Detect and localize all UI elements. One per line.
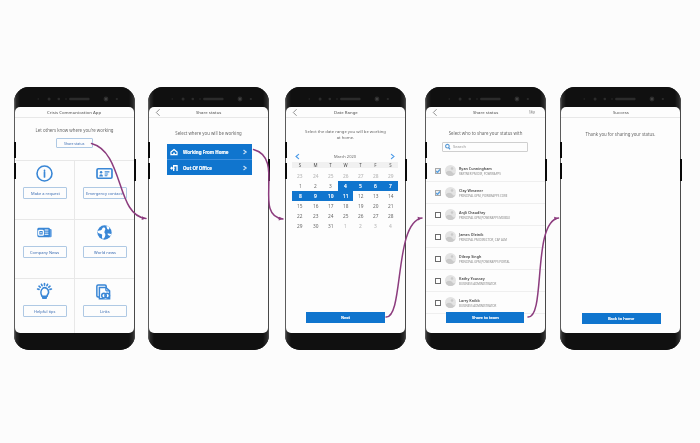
button[interactable]: Links: [83, 305, 127, 317]
staticText: 27: [373, 213, 379, 220]
button[interactable]: 29: [292, 221, 308, 231]
button[interactable]: World news: [83, 246, 127, 258]
button[interactable]: Kathy Youssey: [435, 270, 542, 291]
staticText: Crisis Communication App: [47, 109, 102, 115]
staticText: 2: [359, 223, 362, 230]
button[interactable]: 3: [368, 221, 383, 231]
staticText: 7: [389, 183, 392, 190]
button[interactable]: Next month: [388, 152, 397, 161]
button[interactable]: 28: [383, 211, 398, 221]
button[interactable]: Company News: [23, 246, 67, 258]
staticText: BUSINESS ADMINISTRATOR: [459, 304, 497, 308]
button[interactable]: 2: [308, 181, 323, 191]
staticText: 10: [328, 193, 334, 200]
button[interactable]: Skip: [529, 110, 536, 114]
button[interactable]: 28: [368, 171, 383, 181]
button[interactable]: 20: [368, 201, 383, 211]
button[interactable]: Company News: [15, 220, 74, 278]
button[interactable]: 6: [368, 181, 383, 191]
button[interactable]: Share to team: [446, 312, 524, 323]
button[interactable]: 12: [353, 191, 368, 201]
button[interactable]: Make a request: [23, 187, 67, 199]
button[interactable]: Back: [426, 107, 437, 117]
button[interactable]: 27: [368, 211, 383, 221]
staticText: Share status: [473, 109, 499, 115]
staticText: Helpful tips: [34, 309, 56, 314]
button[interactable]: 17: [323, 201, 338, 211]
button[interactable]: 5: [353, 181, 368, 191]
button[interactable]: Out Of Office: [167, 160, 252, 175]
staticText: Select the date range you will be workin…: [286, 129, 405, 141]
button[interactable]: Ryan Cunningham: [435, 160, 542, 181]
button[interactable]: 21: [383, 201, 398, 211]
staticText: 23: [313, 213, 319, 220]
staticText: Working From Home: [183, 149, 241, 155]
button[interactable]: Anjli Chaudhry: [435, 204, 542, 225]
staticText: Date Range: [334, 109, 358, 115]
button[interactable]: 4: [383, 221, 398, 231]
button[interactable]: 9: [308, 191, 323, 201]
button[interactable]: Search: [442, 142, 528, 152]
staticText: 2: [314, 183, 317, 190]
button[interactable]: 31: [323, 221, 338, 231]
button[interactable]: 14: [383, 191, 398, 201]
button[interactable]: Back: [286, 107, 297, 117]
staticText: Share status: [196, 109, 222, 115]
button[interactable]: Back to home: [582, 313, 661, 324]
button[interactable]: 25: [323, 171, 338, 181]
button[interactable]: 25: [338, 211, 353, 221]
button[interactable]: 22: [292, 211, 308, 221]
button[interactable]: 15: [292, 201, 308, 211]
button[interactable]: 29: [383, 171, 398, 181]
button[interactable]: World news: [75, 220, 134, 278]
button[interactable]: 1: [292, 181, 308, 191]
staticText: James Oleinik: [459, 232, 484, 237]
button[interactable]: 24: [323, 211, 338, 221]
button[interactable]: James Oleinik: [435, 226, 542, 247]
staticText: 9: [314, 193, 317, 200]
button[interactable]: 23: [308, 211, 323, 221]
staticText: 20: [373, 203, 379, 210]
button[interactable]: Dileep Singh: [435, 248, 542, 269]
button[interactable]: 26: [353, 211, 368, 221]
button[interactable]: 1: [338, 221, 353, 231]
button[interactable]: 26: [338, 171, 353, 181]
button[interactable]: Next: [306, 312, 385, 323]
staticText: 11: [343, 193, 349, 200]
button[interactable]: Helpful tips: [15, 279, 74, 333]
button[interactable]: 18: [338, 201, 353, 211]
button[interactable]: Make a request: [15, 161, 74, 219]
staticText: 1: [344, 223, 347, 230]
staticText: Success: [613, 109, 629, 115]
button[interactable]: Working From Home: [167, 144, 252, 159]
staticText: 4: [389, 223, 392, 230]
button[interactable]: 19: [353, 201, 368, 211]
button[interactable]: Links: [75, 279, 134, 333]
button[interactable]: Helpful tips: [23, 305, 67, 317]
button[interactable]: 10: [323, 191, 338, 201]
staticText: 28: [373, 173, 379, 180]
button[interactable]: 30: [308, 221, 323, 231]
button[interactable]: 13: [368, 191, 383, 201]
button[interactable]: 4: [338, 181, 353, 191]
button[interactable]: 11: [338, 191, 353, 201]
button[interactable]: Previous month: [293, 152, 302, 161]
button[interactable]: 27: [353, 171, 368, 181]
button[interactable]: Share status: [56, 138, 93, 148]
button[interactable]: 23: [292, 171, 308, 181]
staticText: Emergency contacts: [86, 191, 124, 196]
button[interactable]: 3: [323, 181, 338, 191]
button[interactable]: 24: [308, 171, 323, 181]
staticText: PRINCIPAL PM DIRECTOR, CAP ALM: [459, 238, 507, 242]
button[interactable]: Back: [149, 107, 160, 117]
button[interactable]: Larry Knibb: [435, 292, 542, 313]
staticText: M: [308, 162, 323, 168]
button[interactable]: Emergency contacts: [75, 161, 134, 219]
button[interactable]: 16: [308, 201, 323, 211]
button[interactable]: Emergency contacts: [83, 187, 127, 199]
button[interactable]: 8: [292, 191, 308, 201]
button[interactable]: 2: [353, 221, 368, 231]
staticText: Share status: [64, 141, 85, 146]
button[interactable]: Clay Wesener: [435, 182, 542, 203]
button[interactable]: 7: [383, 181, 398, 191]
